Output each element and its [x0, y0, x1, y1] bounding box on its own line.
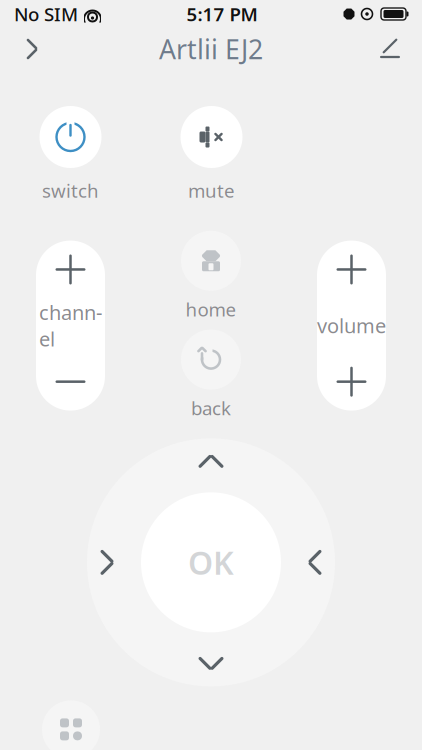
button[interactable]: Mute — [180, 106, 242, 203]
button[interactable]: Left — [84, 532, 130, 592]
button[interactable]: Right — [292, 532, 338, 592]
staticText: 5:17 PM — [186, 2, 257, 26]
button[interactable]: Menu — [42, 700, 100, 750]
button[interactable]: channel up — [36, 241, 105, 298]
staticText: channel — [39, 299, 102, 352]
staticText: volume — [317, 312, 386, 339]
button[interactable]: volume up — [317, 241, 386, 298]
button[interactable]: channel down — [36, 353, 105, 411]
staticText: home — [185, 297, 236, 322]
button[interactable]: Power switch — [39, 106, 101, 203]
button[interactable]: Back — [12, 29, 52, 69]
button[interactable]: Edit — [370, 29, 410, 69]
button[interactable]: Up — [181, 438, 241, 484]
button[interactable]: OK — [141, 492, 281, 632]
staticText: switch — [42, 178, 99, 203]
staticText: No SIM — [14, 2, 78, 26]
button[interactable]: Down — [181, 640, 241, 686]
staticText: back — [191, 396, 231, 420]
staticText: OK — [188, 541, 234, 584]
button[interactable]: volume down — [317, 353, 386, 411]
staticText: mute — [188, 178, 235, 203]
button[interactable]: Home — [181, 231, 241, 322]
staticText: Artlii EJ2 — [159, 31, 263, 67]
button[interactable]: Back — [181, 330, 241, 420]
